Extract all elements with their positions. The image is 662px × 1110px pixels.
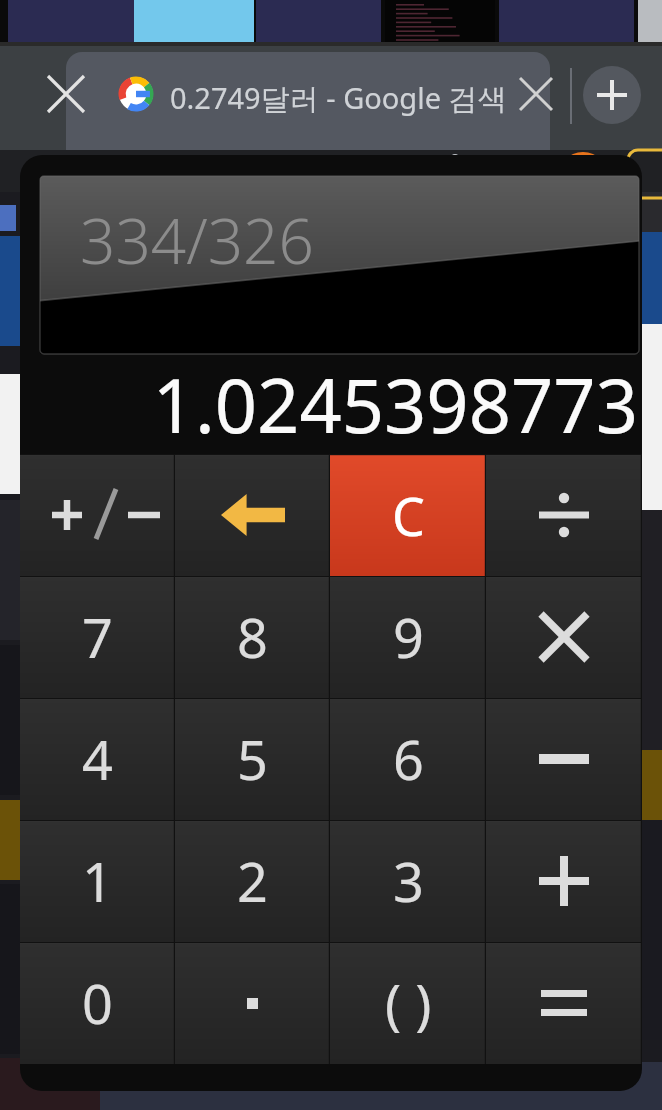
button[interactable]: 8 [175,576,330,698]
staticText: 3 [393,844,424,918]
button[interactable]: Minus [486,698,642,820]
button[interactable] [66,52,550,150]
staticText: 0 [82,966,113,1040]
button[interactable]: Backspace [175,454,330,576]
button[interactable]: Plus [486,820,642,942]
staticText: C [392,480,425,551]
button[interactable]: Close window [44,72,88,116]
button[interactable]: Divide [486,454,642,576]
button[interactable]: 2 [175,820,330,942]
staticText: 1.0245398773 [152,354,638,454]
staticText: 2 [237,844,268,918]
button[interactable]: New tab [583,66,641,124]
button[interactable]: Clear [330,454,486,576]
button[interactable]: 4 [20,698,175,820]
button[interactable]: Multiply [486,576,642,698]
button[interactable]: 6 [330,698,486,820]
button[interactable]: 7 [20,576,175,698]
staticText: 8 [237,600,268,674]
staticText: 6 [393,722,424,796]
staticText: 9 [393,600,424,674]
staticText: 4 [82,722,113,796]
button[interactable]: 3 [330,820,486,942]
staticText: 5 [237,722,268,796]
button[interactable]: Toggle sign [20,454,175,576]
button[interactable]: 1 [20,820,175,942]
button[interactable]: 5 [175,698,330,820]
button[interactable]: Decimal point [175,942,330,1064]
button[interactable]: 0 [20,942,175,1064]
button[interactable]: 9 [330,576,486,698]
staticText: ( ) [385,966,432,1040]
staticText: 1 [82,844,113,918]
button[interactable]: Close tab [514,72,558,116]
button[interactable]: ( ) [330,942,486,1064]
button[interactable]: Equals [486,942,642,1064]
staticText: 334/326 [80,198,314,282]
staticText: 0.2749달러 - Google 검색 [170,78,507,118]
staticText: 7 [82,600,113,674]
